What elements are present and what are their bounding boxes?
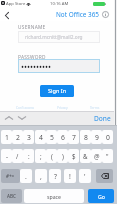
staticText: 6 bbox=[61, 133, 65, 142]
staticText: ' bbox=[84, 172, 86, 181]
button[interactable]: Previous field bbox=[4, 114, 13, 122]
button[interactable]: ; bbox=[35, 149, 46, 163]
staticText: •••••••••• bbox=[21, 61, 52, 72]
staticText: Done bbox=[94, 114, 111, 123]
button[interactable]: / bbox=[12, 149, 23, 163]
button[interactable]: ABC bbox=[1, 189, 22, 203]
staticText: ? bbox=[54, 172, 57, 181]
staticText: 1 bbox=[5, 133, 9, 142]
staticText: richard.mcnitt@mail2.org bbox=[25, 34, 83, 41]
staticText: $ bbox=[72, 152, 76, 160]
button[interactable]: " bbox=[102, 149, 113, 163]
staticText: 0 bbox=[106, 133, 110, 142]
button[interactable]: $ bbox=[68, 149, 79, 163]
button[interactable]: Backspace bbox=[96, 169, 113, 183]
button[interactable]: , bbox=[35, 169, 47, 183]
button[interactable]: ' bbox=[79, 169, 91, 183]
button[interactable]: 4 bbox=[35, 130, 46, 144]
button[interactable]: . bbox=[20, 169, 32, 183]
button[interactable]: 1 bbox=[1, 130, 12, 144]
staticText: Not Office 365 bbox=[56, 10, 100, 19]
staticText: @ bbox=[94, 152, 100, 160]
button[interactable]: 7 bbox=[68, 130, 79, 144]
button[interactable]: ? bbox=[49, 169, 61, 183]
button[interactable]: 0 bbox=[102, 130, 113, 144]
button[interactable]: : bbox=[23, 149, 34, 163]
button[interactable]: Back bbox=[1, 10, 12, 20]
staticText: 7 bbox=[72, 133, 76, 142]
staticText: 2 bbox=[16, 133, 20, 142]
staticText: 10:16 AM bbox=[50, 1, 69, 7]
staticText: Go bbox=[98, 193, 105, 200]
staticText: . bbox=[25, 172, 27, 181]
button[interactable]: Info bbox=[100, 9, 110, 20]
button[interactable]: 3 bbox=[23, 130, 34, 144]
button[interactable]: 2 bbox=[12, 130, 23, 144]
button[interactable]: Not Office 365 bbox=[56, 9, 100, 20]
staticText: Sign In bbox=[48, 87, 67, 95]
button[interactable]: Sign In bbox=[40, 85, 74, 97]
staticText: ( bbox=[51, 152, 53, 160]
button[interactable]: 9 bbox=[91, 130, 102, 144]
staticText: space bbox=[47, 193, 62, 200]
staticText: ! bbox=[69, 172, 71, 181]
button[interactable]: #+= bbox=[1, 169, 20, 183]
staticText: ABC bbox=[7, 193, 16, 199]
staticText: 5 bbox=[50, 133, 54, 142]
staticText: , bbox=[40, 172, 42, 181]
staticText: ; bbox=[40, 152, 42, 160]
button[interactable]: space bbox=[24, 189, 84, 203]
staticText: Can't access bbox=[16, 106, 35, 110]
staticText: " bbox=[106, 152, 109, 160]
button[interactable]: •••••••••• bbox=[18, 59, 100, 73]
staticText: ) bbox=[62, 152, 64, 160]
button[interactable]: Go bbox=[88, 189, 114, 203]
button[interactable]: Next field bbox=[17, 114, 26, 122]
staticText: / bbox=[16, 152, 19, 160]
staticText: 9 bbox=[95, 133, 99, 142]
button[interactable]: richard.mcnitt@mail2.org bbox=[18, 31, 100, 43]
staticText: - bbox=[6, 152, 8, 160]
staticText: USERNAME bbox=[18, 24, 46, 31]
button[interactable]: @ bbox=[91, 149, 102, 163]
button[interactable]: & bbox=[80, 149, 91, 163]
button[interactable]: 6 bbox=[57, 130, 68, 144]
staticText: 4 bbox=[39, 133, 43, 142]
staticText: : bbox=[28, 152, 30, 160]
button[interactable]: ! bbox=[64, 169, 76, 183]
staticText: Terms bbox=[90, 106, 100, 110]
button[interactable]: 8 bbox=[80, 130, 91, 144]
button[interactable]: - bbox=[1, 149, 12, 163]
button[interactable]: ) bbox=[57, 149, 68, 163]
staticText: App Store bbox=[6, 1, 26, 7]
staticText: 8 bbox=[84, 133, 88, 142]
button[interactable]: Done bbox=[93, 113, 111, 124]
button[interactable]: 5 bbox=[46, 130, 57, 144]
button[interactable]: ( bbox=[46, 149, 57, 163]
staticText: & bbox=[83, 152, 88, 160]
staticText: #+= bbox=[6, 173, 15, 179]
staticText: Privacy bbox=[57, 106, 68, 110]
staticText: PASSWORD bbox=[18, 54, 46, 61]
staticText: 3 bbox=[27, 133, 31, 142]
